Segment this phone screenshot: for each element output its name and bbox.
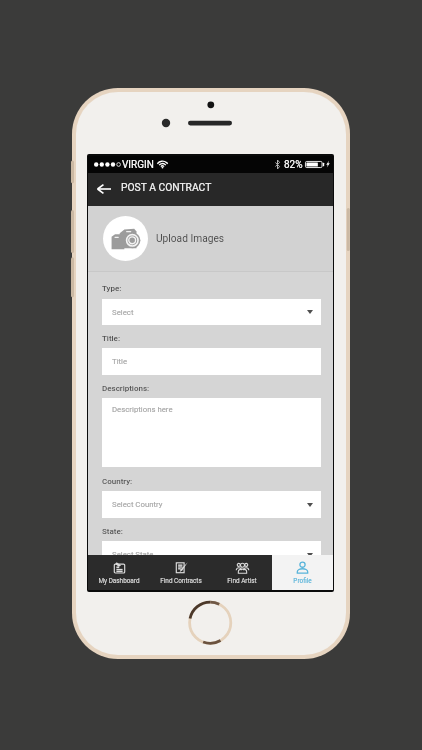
staticText: Descriptions: (102, 384, 150, 393)
staticText: Country: (102, 477, 133, 486)
button[interactable]: Descriptions here (102, 398, 321, 467)
button[interactable]: Find Contracts (150, 555, 211, 590)
staticText: Find Artist (227, 577, 257, 585)
staticText: Select State (112, 550, 154, 559)
staticText: POST A CONTRACT (121, 181, 212, 193)
staticText: VIRGIN (122, 159, 154, 171)
staticText: Type: (102, 284, 122, 293)
staticText: Select Country (112, 500, 163, 509)
button[interactable]: My Dashboard (88, 555, 150, 590)
button[interactable]: Select State (102, 541, 321, 568)
button[interactable]: Select Country (102, 491, 321, 518)
staticText: Title (112, 357, 128, 366)
button[interactable]: Profile (272, 555, 333, 590)
button[interactable]: Back (92, 177, 116, 201)
staticText: Upload Images (156, 233, 225, 245)
staticText: 82% (284, 159, 303, 171)
button[interactable]: Find Artist (211, 555, 272, 590)
staticText: Title: (102, 334, 121, 343)
staticText: Select (112, 308, 134, 317)
staticText: Find Contracts (160, 577, 202, 585)
button[interactable]: Select (102, 299, 321, 325)
staticText: My Dashboard (98, 577, 140, 585)
staticText: Profile (293, 577, 312, 585)
staticText: Descriptions here (112, 405, 173, 414)
button[interactable]: Upload Images (88, 206, 333, 271)
staticText: State: (102, 527, 123, 536)
button[interactable]: Title (102, 348, 321, 375)
